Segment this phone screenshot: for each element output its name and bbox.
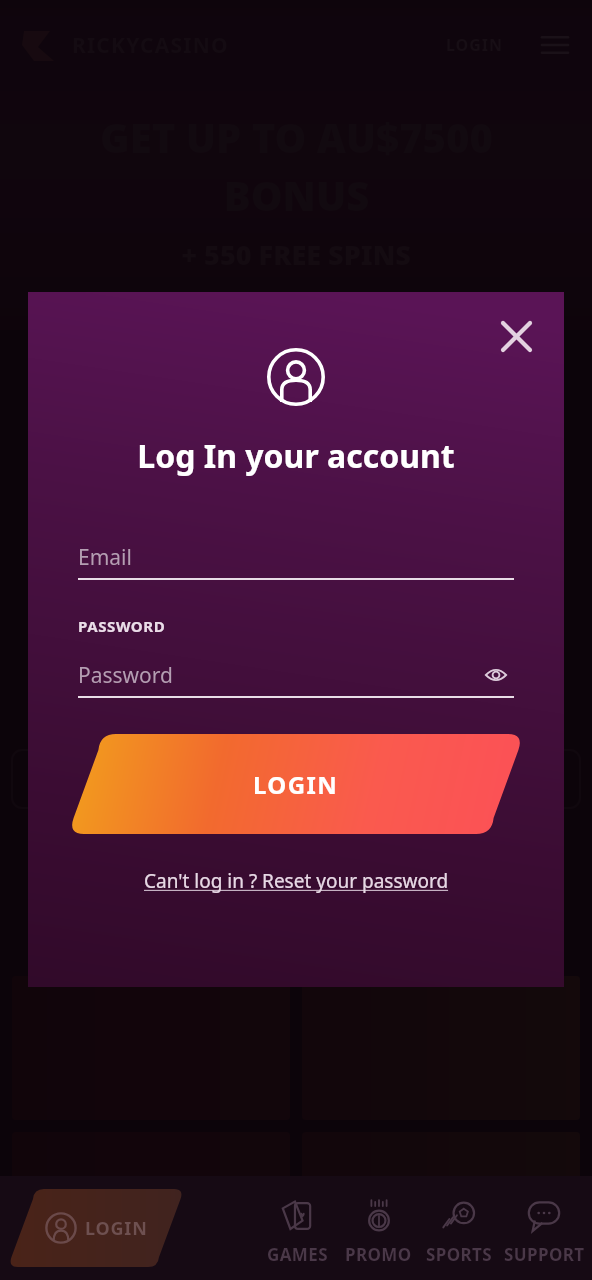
staticText: PASSWORD: [78, 616, 166, 636]
button[interactable]: Show password: [478, 657, 514, 693]
button[interactable]: Can't log in ? Reset your password: [136, 860, 457, 902]
button[interactable]: Email: [78, 536, 514, 578]
button[interactable]: SPORTS: [419, 1176, 500, 1280]
button[interactable]: Password: [78, 654, 514, 696]
button[interactable]: Menu: [538, 28, 572, 62]
button[interactable]: Close: [492, 312, 540, 360]
staticText: PROMO: [345, 1243, 412, 1266]
staticText: Password: [78, 661, 173, 690]
staticText: Log In your account: [137, 434, 455, 478]
staticText: Can't log in ? Reset your password: [144, 868, 449, 894]
staticText: LOGIN: [85, 1216, 148, 1241]
staticText: SUPPORT: [504, 1243, 585, 1266]
button[interactable]: [302, 1132, 580, 1276]
button[interactable]: [302, 976, 580, 1120]
staticText: GAMES: [267, 1243, 328, 1266]
staticText: Email: [78, 543, 132, 572]
button[interactable]: [12, 976, 290, 1120]
staticText: LOGIN: [253, 768, 339, 801]
button[interactable]: LOGIN: [68, 734, 524, 834]
button[interactable]: [12, 1132, 290, 1276]
button[interactable]: GAMES: [257, 1176, 338, 1280]
button[interactable]: LOGIN: [8, 1189, 184, 1267]
staticText: LOGIN: [446, 34, 504, 56]
button[interactable]: PROMO: [338, 1176, 419, 1280]
button[interactable]: SUPPORT: [500, 1176, 588, 1280]
staticText: SPORTS: [426, 1243, 493, 1266]
